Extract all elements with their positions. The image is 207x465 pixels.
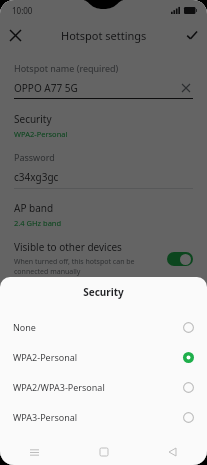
button[interactable]: Home	[69, 439, 138, 465]
staticText: 10:00	[12, 5, 33, 16]
staticText: Hotspot name (required)	[14, 62, 119, 74]
button[interactable]: Recents	[0, 439, 69, 465]
staticText: c34xg3gc	[14, 170, 59, 184]
staticText: Visible to other devices	[14, 240, 122, 254]
staticText: AP band	[14, 201, 54, 215]
staticText: WPA2-Personal	[14, 129, 68, 139]
staticText: Hotspot settings	[61, 28, 147, 43]
button[interactable]: Save	[177, 20, 207, 50]
button[interactable]: Password	[0, 151, 207, 189]
staticText: Password	[14, 151, 55, 163]
staticText: 2.4 GHz band	[14, 218, 62, 228]
button[interactable]: None	[0, 312, 207, 342]
button[interactable]: Hotspot name (required)	[0, 62, 207, 99]
button[interactable]: Clear	[179, 81, 193, 95]
staticText: OPPO A77 5G	[14, 81, 179, 95]
button[interactable]: Close	[0, 20, 30, 50]
staticText: Security	[0, 285, 207, 299]
staticText: None	[13, 321, 183, 333]
staticText: WPA2-Personal	[13, 351, 183, 363]
staticText: When turned off, this hotspot can be con…	[14, 257, 159, 277]
button[interactable]: WPA2-Personal	[0, 342, 207, 372]
button[interactable]: AP band	[0, 201, 207, 228]
button[interactable]: Visible to other devices	[0, 240, 207, 277]
button[interactable]: Back	[138, 439, 207, 465]
button[interactable]: WPA2/WPA3-Personal	[0, 372, 207, 402]
staticText: WPA3-Personal	[13, 411, 183, 423]
button[interactable]	[167, 252, 193, 266]
staticText: WPA2/WPA3-Personal	[13, 381, 183, 393]
button[interactable]: WPA3-Personal	[0, 402, 207, 432]
button[interactable]: Security	[0, 112, 207, 139]
staticText: Security	[14, 112, 52, 126]
